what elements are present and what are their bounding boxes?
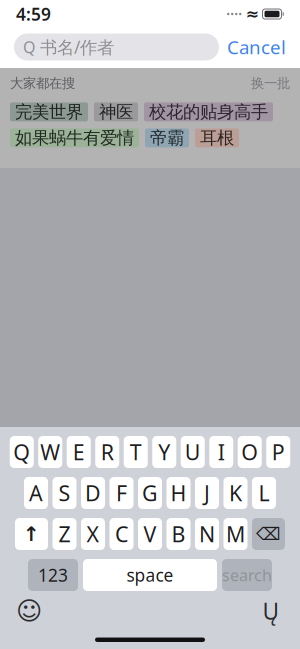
staticText: N <box>199 520 215 548</box>
button[interactable]: V <box>138 518 162 550</box>
staticText: 书名/作者 <box>40 35 114 58</box>
button[interactable]: search <box>222 559 272 591</box>
staticText: ↑ <box>23 523 40 545</box>
staticText: ⌫ <box>256 524 281 544</box>
button[interactable]: X <box>81 518 105 550</box>
button[interactable]: F <box>109 477 133 509</box>
staticText: W <box>40 438 60 466</box>
button[interactable]: J <box>195 477 219 509</box>
button[interactable]: 校花的贴身高手 <box>144 102 273 121</box>
button[interactable]: R <box>95 436 119 468</box>
staticText: I <box>218 438 225 466</box>
button[interactable]: U <box>181 436 205 468</box>
staticText: U <box>185 438 201 466</box>
button[interactable]: E <box>67 436 91 468</box>
staticText: L <box>258 479 269 507</box>
staticText: search <box>222 564 272 586</box>
button[interactable]: N <box>195 518 219 550</box>
button[interactable]: Emoji <box>12 597 46 625</box>
staticText: M <box>226 520 245 548</box>
staticText: R <box>101 438 114 466</box>
staticText: O <box>241 438 258 466</box>
staticText: 神医 <box>99 101 133 122</box>
staticText: Y <box>158 438 170 466</box>
button[interactable]: G <box>138 477 162 509</box>
staticText: K <box>229 479 242 507</box>
staticText: Z <box>58 520 70 548</box>
button[interactable]: 完美世界 <box>10 102 88 121</box>
button[interactable]: space <box>83 559 217 591</box>
staticText: 4:59 <box>16 2 51 25</box>
button[interactable]: A <box>24 477 48 509</box>
button[interactable]: O <box>238 436 262 468</box>
button[interactable]: P <box>266 436 290 468</box>
staticText: 耳根 <box>200 127 234 148</box>
staticText: Q <box>13 438 30 466</box>
staticText: D <box>85 479 101 507</box>
staticText: 帝霸 <box>150 127 184 148</box>
staticText: Ų <box>262 596 279 626</box>
staticText: G <box>142 479 158 507</box>
button[interactable]: Cancel <box>227 33 286 60</box>
button[interactable]: 神医 <box>94 102 138 121</box>
button[interactable]: 换一批 <box>251 75 290 91</box>
staticText: Cancel <box>227 35 286 59</box>
staticText: H <box>170 479 186 507</box>
staticText: Q <box>23 36 35 58</box>
staticText: ☺ <box>16 597 42 625</box>
button[interactable]: S <box>52 477 76 509</box>
staticText: S <box>58 479 70 507</box>
staticText: E <box>73 438 85 466</box>
staticText: 换一批 <box>251 75 290 91</box>
button[interactable]: C <box>109 518 133 550</box>
staticText: B <box>171 520 185 548</box>
button[interactable]: 如果蜗牛有爱情 <box>10 128 139 147</box>
button[interactable]: 帝霸 <box>145 128 189 147</box>
button[interactable]: Y <box>152 436 176 468</box>
staticText: T <box>130 438 142 466</box>
staticText: 完美世界 <box>15 101 83 122</box>
staticText: 123 <box>38 563 68 586</box>
button[interactable]: 耳根 <box>195 128 239 147</box>
button[interactable]: Dictation <box>254 597 288 625</box>
button[interactable]: K <box>223 477 247 509</box>
button[interactable]: Shift <box>15 518 48 550</box>
button[interactable]: T <box>124 436 148 468</box>
button[interactable]: Delete <box>252 518 285 550</box>
button[interactable]: H <box>166 477 190 509</box>
staticText: ≈ <box>245 5 258 23</box>
staticText: A <box>29 479 43 507</box>
staticText: V <box>143 520 156 548</box>
staticText: C <box>115 520 128 548</box>
button[interactable]: D <box>81 477 105 509</box>
staticText: 校花的贴身高手 <box>149 101 268 122</box>
staticText: 大家都在搜 <box>10 75 75 91</box>
staticText: space <box>126 563 173 586</box>
button[interactable]: 123 <box>28 559 78 591</box>
staticText: J <box>204 479 210 507</box>
button[interactable]: B <box>166 518 190 550</box>
button[interactable]: M <box>223 518 247 550</box>
button[interactable]: Z <box>52 518 76 550</box>
button[interactable]: I <box>209 436 233 468</box>
button[interactable]: Q <box>10 436 34 468</box>
staticText: X <box>86 520 99 548</box>
button[interactable]: W <box>38 436 62 468</box>
staticText: F <box>116 479 127 507</box>
staticText: P <box>272 438 285 466</box>
button[interactable]: L <box>252 477 276 509</box>
staticText: 如果蜗牛有爱情 <box>15 127 134 148</box>
